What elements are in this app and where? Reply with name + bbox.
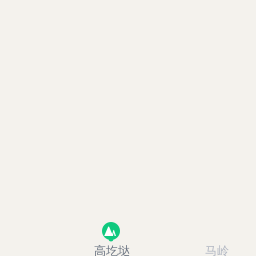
staticText: 马岭: [205, 244, 229, 256]
staticText: 高圪垯: [94, 244, 130, 256]
button[interactable]: 高圪垯: [89, 219, 133, 256]
